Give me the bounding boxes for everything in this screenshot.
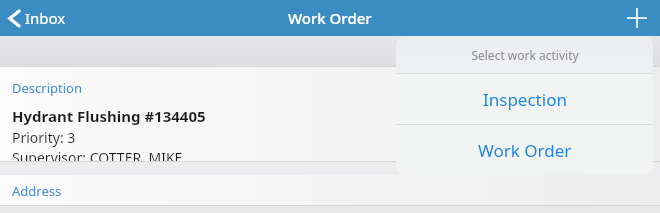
staticText: Inspection xyxy=(483,88,567,111)
staticText: Work Order xyxy=(478,139,572,162)
staticText: Work Order xyxy=(288,8,372,28)
button[interactable]: Inspection xyxy=(396,74,653,124)
staticText: Supervisor: COTTER, MIKE xyxy=(12,148,183,161)
staticText: Address xyxy=(12,182,62,200)
staticText: Priority: 3 xyxy=(12,128,76,147)
button[interactable]: Work Order xyxy=(396,125,653,175)
button[interactable]: Inbox xyxy=(0,0,78,36)
staticText: Description xyxy=(12,79,82,97)
button[interactable]: Add work activity xyxy=(614,0,660,36)
staticText: Inbox xyxy=(25,8,66,28)
staticText: Hydrant Flushing #134405 xyxy=(12,106,206,126)
staticText: Select work activity xyxy=(471,47,579,63)
